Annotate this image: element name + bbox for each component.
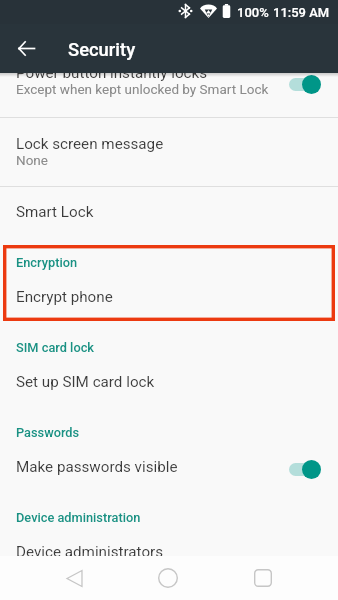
- staticText: Set up SIM card lock: [16, 373, 155, 391]
- staticText: Lock screen message: [16, 135, 164, 153]
- staticText: Device administration: [16, 510, 141, 525]
- button[interactable]: Encrypt phone: [0, 282, 338, 318]
- button[interactable]: Recent apps: [241, 556, 285, 600]
- button[interactable]: Back: [52, 556, 96, 600]
- button[interactable]: Make passwords visible: [0, 452, 338, 488]
- button[interactable]: Lock screen message: [0, 118, 338, 186]
- staticText: Device administrators: [16, 543, 164, 556]
- staticText: Passwords: [16, 425, 80, 440]
- button[interactable]: Device administrators: [0, 537, 338, 556]
- staticText: Smart Lock: [16, 203, 94, 221]
- staticText: Make passwords visible: [16, 458, 178, 476]
- staticText: 100%: [237, 5, 269, 20]
- staticText: Encryption: [16, 255, 78, 270]
- button[interactable]: Smart Lock: [0, 187, 338, 238]
- button[interactable]: Set up SIM card lock: [0, 367, 338, 403]
- staticText: 11:59 AM: [273, 5, 330, 20]
- staticText: None: [16, 152, 48, 168]
- button[interactable]: Power button instantly locks: [0, 72, 338, 117]
- staticText: Encrypt phone: [16, 288, 113, 306]
- button[interactable]: Navigate up: [8, 24, 44, 72]
- staticText: SIM card lock: [16, 340, 94, 355]
- staticText: Except when kept unlocked by Smart Lock: [16, 81, 269, 97]
- staticText: Security: [68, 39, 136, 61]
- staticText: Power button instantly locks: [16, 72, 208, 82]
- button[interactable]: Home: [146, 556, 190, 600]
